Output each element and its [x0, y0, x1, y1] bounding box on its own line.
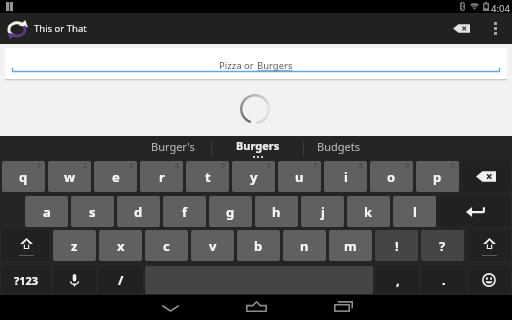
other: Backspace: [476, 171, 496, 182]
staticText: d: [134, 203, 143, 221]
button[interactable]: u: [278, 161, 321, 192]
button[interactable]: l: [393, 196, 436, 227]
button[interactable]: Pizza or: [5, 48, 507, 79]
button[interactable]: q: [2, 161, 45, 192]
other: Shift: [13, 233, 39, 258]
button[interactable]: /: [99, 266, 142, 294]
staticText: 1: [37, 161, 42, 171]
button[interactable]: g: [209, 196, 252, 227]
staticText: v: [209, 237, 217, 255]
staticText: l: [413, 203, 417, 221]
other: Voice input: [70, 274, 79, 287]
staticText: ,: [396, 271, 400, 289]
staticText: ?123: [14, 273, 39, 288]
staticText: s: [89, 203, 96, 221]
button[interactable]: v: [191, 230, 234, 261]
staticText: Burgers: [257, 59, 293, 72]
button[interactable]: c: [145, 230, 188, 261]
staticText: 7: [313, 161, 318, 171]
button[interactable]: s: [71, 196, 114, 227]
staticText: q: [19, 168, 28, 186]
staticText: 3: [129, 161, 134, 171]
staticText: n: [300, 237, 309, 255]
staticText: x: [117, 237, 125, 255]
button[interactable]: r: [140, 161, 183, 192]
staticText: g: [226, 203, 235, 221]
staticText: Burgers: [236, 138, 280, 153]
staticText: .: [442, 271, 446, 289]
button[interactable]: More options: [483, 13, 507, 44]
button[interactable]: Delete: [441, 13, 481, 44]
other: Enter: [466, 206, 485, 217]
button[interactable]: h: [255, 196, 298, 227]
staticText: 8: [359, 161, 364, 171]
staticText: 5: [221, 161, 226, 171]
staticText: k: [364, 203, 373, 221]
staticText: h: [272, 203, 281, 221]
button[interactable]: Recents: [300, 295, 386, 320]
staticText: f: [182, 203, 188, 221]
staticText: Burger's: [151, 139, 195, 154]
button[interactable]: a: [25, 196, 68, 227]
staticText: Pizza or: [219, 59, 257, 72]
button[interactable]: !: [375, 230, 418, 261]
staticText: p: [433, 168, 442, 186]
button[interactable]: Enter: [440, 196, 510, 227]
button[interactable]: ,: [376, 266, 419, 294]
button[interactable]: p: [416, 161, 459, 192]
button[interactable]: m: [329, 230, 372, 261]
staticText: 0: [451, 161, 456, 171]
button[interactable]: n: [283, 230, 326, 261]
staticText: z: [71, 237, 78, 255]
staticText: t: [205, 168, 211, 186]
staticText: 4:04: [491, 2, 510, 15]
staticText: 2: [83, 161, 88, 171]
button[interactable]: w: [48, 161, 91, 192]
staticText: /: [118, 271, 124, 289]
button[interactable]: k: [347, 196, 390, 227]
staticText: This or That: [34, 22, 87, 35]
staticText: ?: [439, 237, 446, 255]
staticText: y: [250, 168, 258, 186]
staticText: a: [43, 203, 51, 221]
button[interactable]: Emoji: [468, 266, 510, 294]
button[interactable]: b: [237, 230, 280, 261]
staticText: j: [321, 203, 325, 221]
staticText: o: [387, 168, 396, 186]
button[interactable]: z: [53, 230, 96, 261]
staticText: c: [163, 237, 170, 255]
button[interactable]: Burger's: [131, 136, 214, 161]
button[interactable]: Budgets: [297, 136, 380, 161]
button[interactable]: Voice input: [53, 266, 96, 294]
button[interactable]: Shift: [468, 230, 510, 261]
button[interactable]: i: [324, 161, 367, 192]
button[interactable]: e: [94, 161, 137, 192]
button[interactable]: .: [422, 266, 465, 294]
button[interactable]: ?123: [2, 266, 50, 294]
staticText: m: [344, 237, 357, 255]
button[interactable]: Backspace: [462, 161, 510, 192]
button[interactable]: t: [186, 161, 229, 192]
other: Shift: [476, 233, 502, 258]
staticText: b: [254, 237, 263, 255]
other: Emoji: [482, 273, 496, 287]
button[interactable]: Shift: [2, 230, 49, 261]
staticText: u: [295, 168, 304, 186]
button[interactable]: Burgers: [212, 136, 303, 161]
button[interactable]: ?: [421, 230, 464, 261]
staticText: e: [112, 168, 120, 186]
button[interactable]: o: [370, 161, 413, 192]
staticText: w: [64, 168, 76, 186]
staticText: i: [344, 168, 348, 186]
button[interactable]: Back: [127, 295, 213, 320]
staticText: Budgets: [317, 139, 360, 154]
staticText: 6: [267, 161, 272, 171]
button[interactable]: y: [232, 161, 275, 192]
button[interactable]: Home: [213, 295, 299, 320]
button[interactable]: x: [99, 230, 142, 261]
button[interactable]: j: [301, 196, 344, 227]
button[interactable]: f: [163, 196, 206, 227]
staticText: 4: [175, 161, 180, 171]
button[interactable]: d: [117, 196, 160, 227]
